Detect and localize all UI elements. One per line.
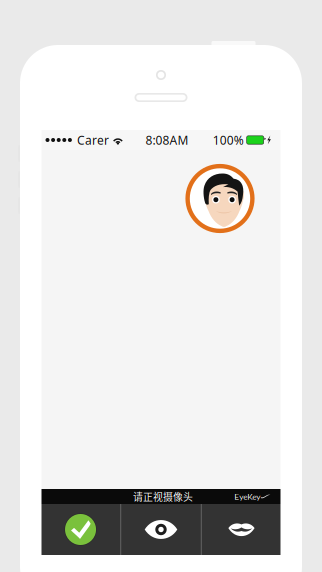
staticText: Carer [77, 132, 109, 148]
button[interactable]: Eyes [121, 504, 201, 555]
button[interactable]: Confirm [41, 504, 120, 555]
staticText: 100% [213, 132, 244, 148]
staticText: EyeKey [234, 491, 260, 501]
button[interactable]: Mouth [202, 504, 281, 555]
staticText: 请正视摄像头 [133, 489, 193, 504]
staticText: 8:08AM [145, 132, 188, 148]
